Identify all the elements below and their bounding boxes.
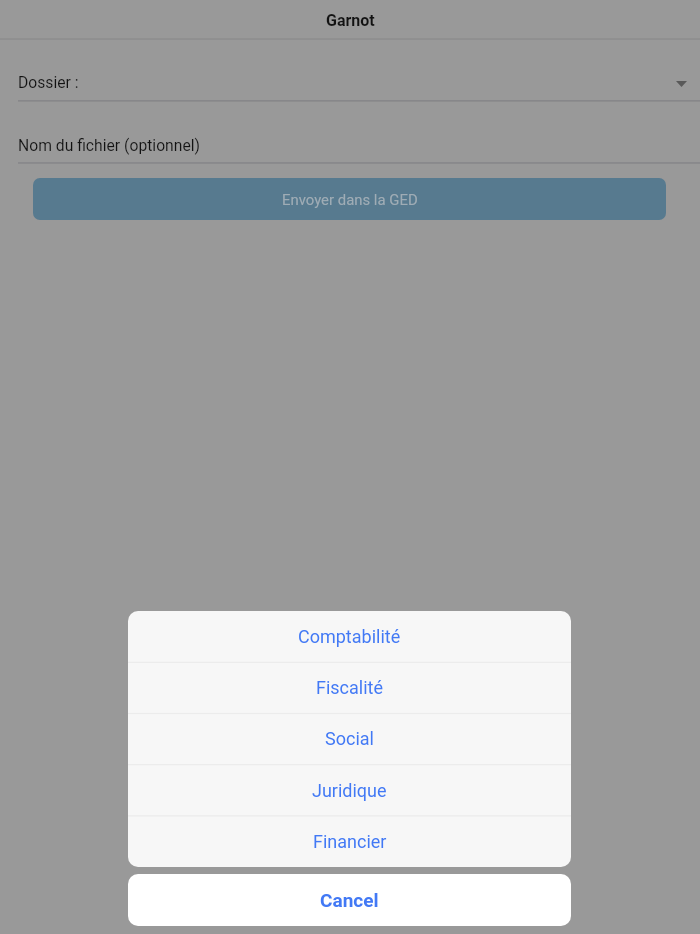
staticText: Nom du fichier (optionnel) [18,136,200,154]
staticText: Juridique [312,780,387,801]
button[interactable]: Cancel [128,874,571,926]
button[interactable]: Social [128,713,571,764]
staticText: Comptabilité [298,626,401,647]
button[interactable]: Financier [128,816,571,867]
staticText: Dossier : [18,73,79,91]
staticText: Financier [313,831,387,852]
button[interactable]: Comptabilité [128,611,571,662]
staticText: Social [325,728,374,749]
button[interactable]: Fiscalité [128,662,571,713]
staticText: Fiscalité [316,677,384,698]
button[interactable]: Dossier [0,57,700,101]
staticText: Cancel [320,889,379,911]
button[interactable]: Envoyer dans la GED [33,178,666,220]
button[interactable]: Juridique [128,765,571,816]
button[interactable]: Nom du fichier (optionnel) [0,119,700,163]
staticText: Garnot [326,11,375,30]
staticText: Envoyer dans la GED [282,191,418,208]
